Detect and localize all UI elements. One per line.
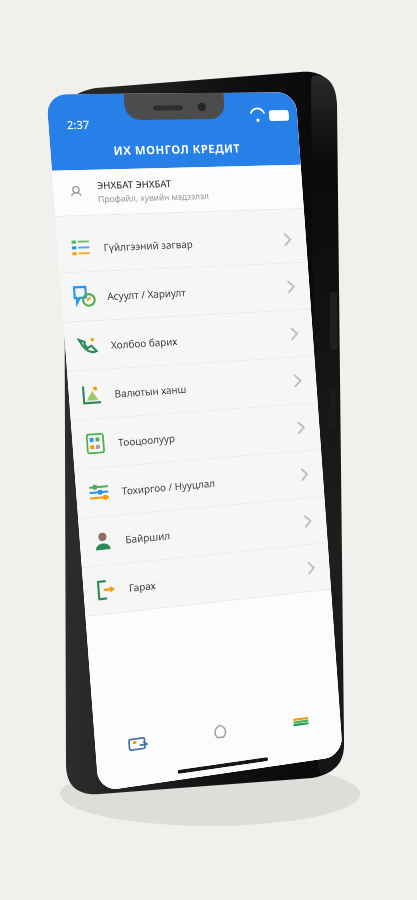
staticText: Профайл, хувийн мэдээлэл (97, 190, 210, 205)
staticText: Гарах (128, 562, 306, 595)
button[interactable]: Тохиргоо / Нууцлал (74, 450, 324, 518)
staticText: ИХ МОНГОЛ КРЕДИТ (113, 140, 242, 159)
staticText: Гүйлгээний загвар (103, 233, 282, 254)
staticText: Асуулт / Хариулт (107, 280, 286, 303)
button[interactable]: Асуулт / Хариулт (60, 263, 311, 322)
button[interactable]: Гарах (82, 543, 331, 616)
staticText: Валютын ханш (114, 375, 292, 401)
staticText: ЭНХБАТ ЭНХБАТ (96, 177, 172, 192)
staticText: Тооцоолуур (118, 422, 296, 449)
button[interactable]: Валютын ханш (67, 356, 318, 420)
button[interactable]: Wallet (93, 712, 181, 775)
button[interactable]: Гүйлгээний загвар (56, 216, 308, 273)
button[interactable]: Тооцоолуур (71, 403, 321, 469)
button[interactable]: Байршил (78, 497, 328, 567)
staticText: Байршил (125, 515, 302, 546)
button[interactable]: ЭНХБАТ ЭНХБАТ (52, 165, 304, 216)
staticText: 2:37 (66, 116, 90, 132)
button[interactable]: Холбоо барих (63, 310, 314, 371)
button[interactable]: Notifications (177, 701, 263, 763)
staticText: Тохиргоо / Нууцлал (121, 469, 299, 498)
staticText: Холбоо барих (110, 328, 289, 352)
button[interactable]: Menu (259, 690, 342, 752)
